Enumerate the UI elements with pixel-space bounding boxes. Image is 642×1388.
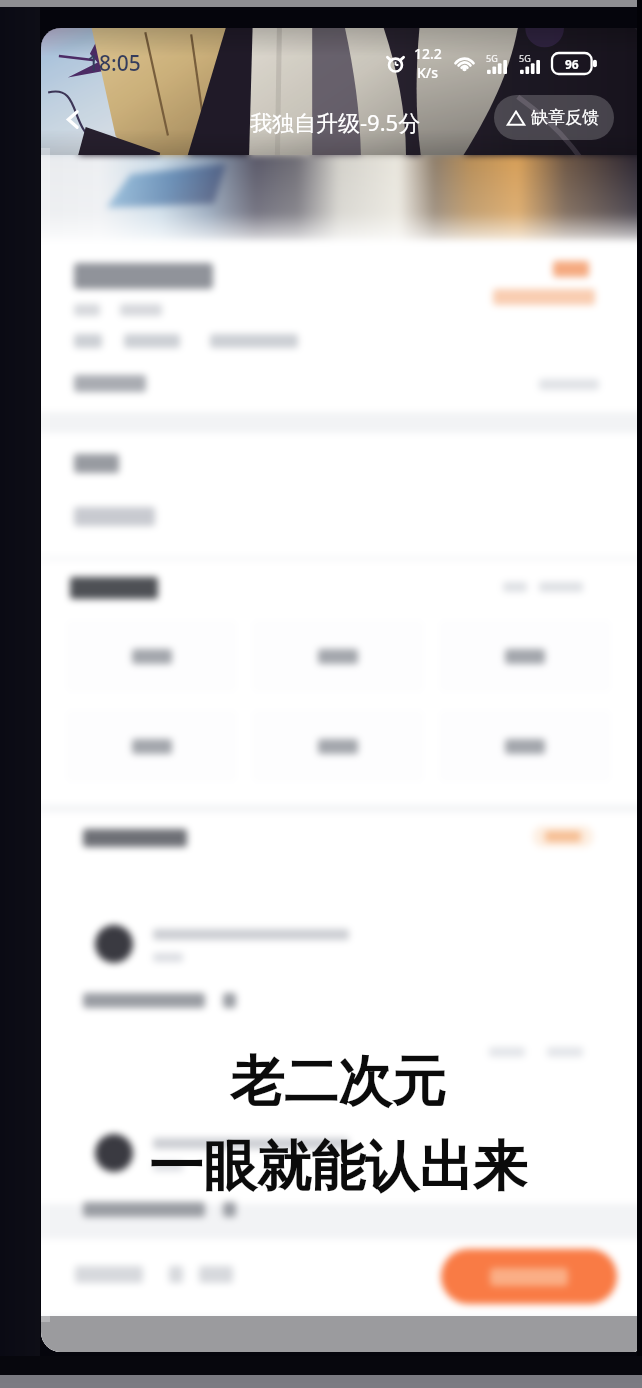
staticText: 老二次元 xyxy=(230,1048,446,1116)
staticText: 5G xyxy=(486,52,498,64)
button[interactable]: 缺章反馈 xyxy=(494,95,614,140)
staticText: 5G xyxy=(519,52,531,64)
staticText: 12.2 xyxy=(414,44,442,63)
button[interactable] xyxy=(252,620,424,692)
staticText: 96 xyxy=(565,56,579,72)
button[interactable] xyxy=(439,710,611,782)
staticText: 我独自升级-9.5分 xyxy=(250,107,421,137)
staticText: 一眼就能认出来 xyxy=(149,1133,527,1201)
button[interactable] xyxy=(439,620,611,692)
button[interactable] xyxy=(533,826,593,847)
button[interactable]: Back xyxy=(50,97,94,141)
button[interactable] xyxy=(252,710,424,782)
staticText: K/s xyxy=(417,63,439,82)
button[interactable] xyxy=(66,620,237,692)
staticText: 缺章反馈 xyxy=(531,107,599,128)
staticText: 18:05 xyxy=(87,49,141,78)
button[interactable] xyxy=(441,1249,617,1304)
button[interactable] xyxy=(66,710,237,782)
